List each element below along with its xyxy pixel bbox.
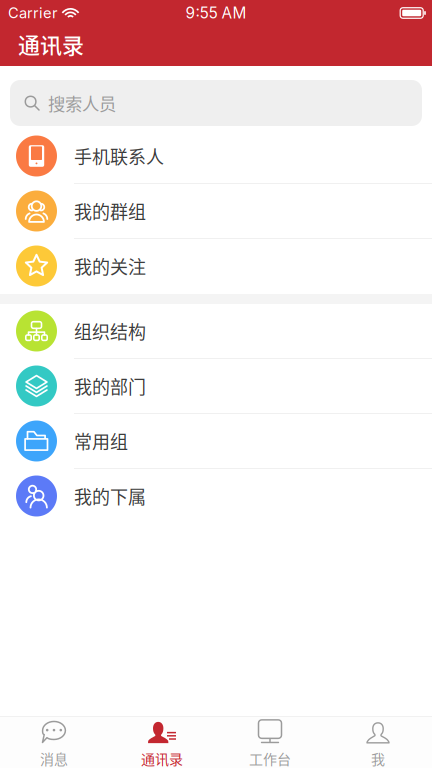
staticText: 组织结构 [74,318,146,344]
button[interactable]: 我的下属 [0,469,432,524]
staticText: 我 [371,748,385,768]
button[interactable]: 工作台 [216,717,324,768]
staticText: 我的下属 [74,483,146,509]
staticText: 9:55 AM [185,4,246,22]
staticText: 搜索人员 [48,90,116,116]
staticText: Carrier [8,4,58,22]
staticText: 工作台 [249,748,291,768]
staticText: 通讯录 [18,28,84,60]
button[interactable]: 手机联系人 [0,129,432,184]
staticText: 常用组 [74,428,128,454]
button[interactable]: 我的部门 [0,359,432,414]
staticText: 通讯录 [141,748,183,768]
staticText: 我的关注 [74,253,146,279]
staticText: 我的部门 [74,373,146,399]
staticText: 手机联系人 [74,143,164,169]
button[interactable]: 常用组 [0,414,432,469]
staticText: 我的群组 [74,198,146,224]
button[interactable]: 消息 [0,717,108,768]
button[interactable]: 通讯录 [108,717,216,768]
button[interactable]: 组织结构 [0,304,432,359]
button[interactable]: 我 [324,717,432,768]
button[interactable]: 我的群组 [0,184,432,239]
staticText: 消息 [40,748,68,768]
button[interactable]: 我的关注 [0,239,432,294]
